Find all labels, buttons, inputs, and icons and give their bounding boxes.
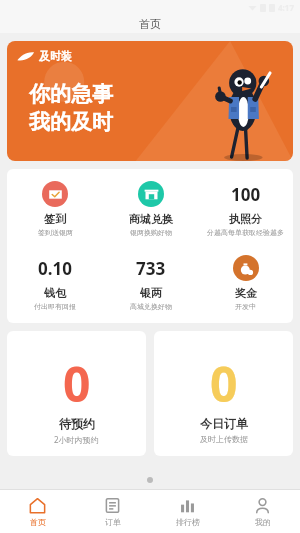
button[interactable]: 订单 (75, 490, 150, 533)
staticText: 今日订单 (200, 416, 248, 431)
staticText: 4:17 (278, 2, 294, 13)
staticText: 付出即有回报 (34, 302, 76, 311)
staticText: 及时装 (39, 49, 72, 63)
staticText: 订单 (105, 517, 121, 527)
button[interactable]: 商城兑换 (103, 179, 198, 239)
staticText: 商城兑换 (129, 212, 173, 226)
staticText: 银两 (140, 286, 162, 300)
staticText: 分越高每单获取经验越多 (207, 228, 284, 237)
staticText: 高城兑换好物 (130, 302, 172, 311)
staticText: 排行榜 (176, 517, 200, 527)
staticText: 签到 (44, 212, 66, 226)
button[interactable]: 0.10 (7, 253, 103, 313)
staticText: 银两换购好物 (130, 228, 172, 237)
staticText: 0 (210, 351, 238, 416)
button[interactable]: 我的 (225, 490, 300, 533)
staticText: 2小时内预约 (54, 434, 99, 444)
staticText: 及时上传数据 (200, 434, 248, 444)
staticText: 签到送银两 (38, 228, 73, 237)
button[interactable]: 733 (103, 253, 198, 313)
staticText: 0.10 (38, 257, 72, 280)
staticText: 733 (136, 257, 166, 280)
button[interactable]: 签到 (7, 179, 103, 239)
staticText: 奖金 (235, 286, 257, 300)
staticText: 我的及时 (29, 109, 113, 135)
staticText: 我的 (255, 517, 271, 527)
staticText: 执照分 (229, 212, 262, 226)
staticText: 首页 (139, 17, 161, 31)
staticText: 100 (231, 183, 261, 206)
staticText: 你的急事 (29, 81, 113, 107)
button[interactable]: 100 (198, 179, 293, 239)
staticText: 0 (63, 351, 91, 416)
staticText: 首页 (30, 517, 46, 527)
button[interactable]: 首页 (0, 490, 75, 533)
staticText: 待预约 (59, 416, 95, 431)
button[interactable]: 排行榜 (150, 490, 225, 533)
staticText: 钱包 (44, 286, 66, 300)
button[interactable]: 奖金 (198, 253, 293, 313)
button[interactable]: 及时装 (7, 41, 293, 161)
button[interactable]: 0 (154, 331, 293, 456)
button[interactable]: 0 (7, 331, 146, 456)
staticText: 开发中 (235, 302, 256, 311)
